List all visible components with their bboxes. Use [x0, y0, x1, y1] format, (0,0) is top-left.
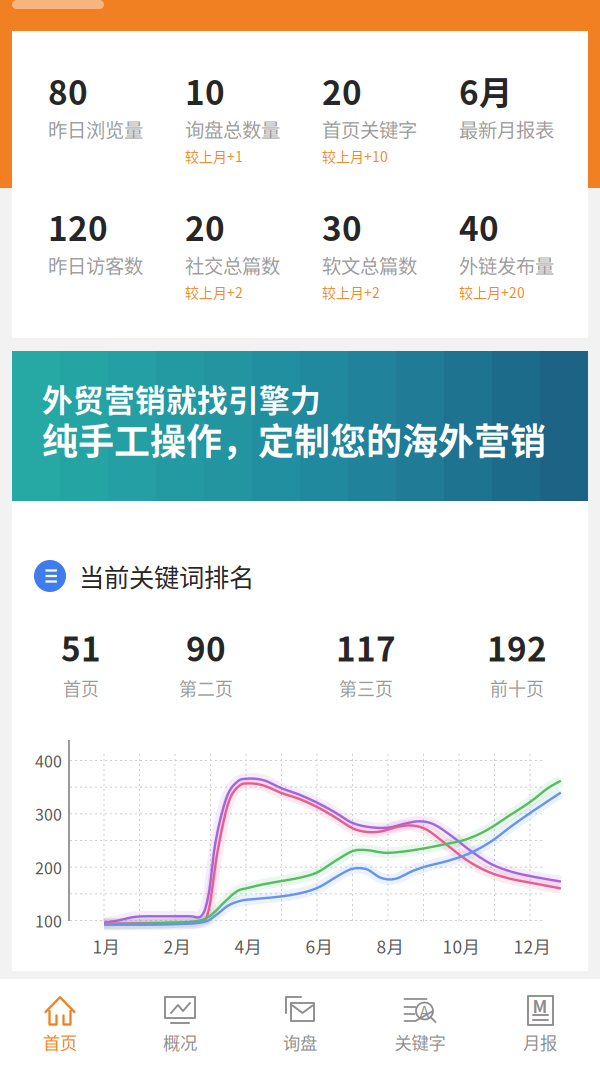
staticText: 8月 — [376, 933, 403, 959]
staticText: 概况 — [163, 1029, 197, 1055]
staticText: 90 — [186, 623, 226, 671]
staticText: 外链发布量 — [459, 251, 554, 279]
staticText: 社交总篇数 — [185, 251, 280, 279]
staticText: 首页 — [43, 1029, 77, 1055]
staticText: 月报 — [523, 1029, 557, 1055]
staticText: 192 — [487, 623, 547, 671]
staticText: 200 — [35, 856, 62, 879]
staticText: 关键字 — [394, 1029, 445, 1055]
staticText: 第三页 — [339, 675, 393, 701]
staticText: 10 — [185, 66, 225, 115]
staticText: 前十页 — [490, 675, 544, 701]
staticText: 300 — [35, 802, 62, 825]
button[interactable]: M — [480, 979, 600, 1067]
staticText: 4月 — [234, 933, 261, 959]
staticText: 询盘总数量 — [185, 115, 280, 143]
staticText: A — [419, 999, 429, 1023]
staticText: 昨日访客数 — [48, 251, 143, 279]
staticText: 外贸营销就找引擎力 — [42, 376, 321, 421]
staticText: 首页 — [63, 675, 99, 701]
button[interactable]: 询盘 — [240, 979, 360, 1067]
staticText: 2月 — [163, 933, 190, 959]
button[interactable]: 当前关键词排名 — [34, 556, 574, 596]
staticText: 较上月+10 — [322, 146, 388, 166]
staticText: 当前关键词排名 — [79, 558, 254, 594]
staticText: 40 — [459, 202, 499, 251]
staticText: 较上月+20 — [459, 282, 525, 302]
staticText: 6月 — [459, 66, 512, 115]
button[interactable]: A — [360, 979, 480, 1067]
staticText: 第二页 — [179, 675, 233, 701]
staticText: 软文总篇数 — [322, 251, 417, 279]
button[interactable]: 概况 — [120, 979, 240, 1067]
staticText: 30 — [322, 202, 362, 251]
staticText: 最新月报表 — [459, 115, 554, 143]
staticText: 1月 — [92, 933, 119, 959]
staticText: 昨日浏览量 — [48, 115, 143, 143]
staticText: 较上月+2 — [322, 282, 380, 302]
staticText: 117 — [336, 623, 396, 671]
staticText: 询盘 — [283, 1029, 317, 1055]
staticText: 100 — [35, 909, 62, 932]
staticText: 51 — [61, 623, 101, 671]
staticText: 较上月+2 — [185, 282, 243, 302]
button[interactable]: 首页 — [0, 979, 120, 1067]
staticText: 400 — [35, 749, 62, 772]
staticText: 80 — [48, 66, 88, 115]
staticText: 120 — [48, 202, 108, 251]
staticText: 12月 — [513, 933, 550, 959]
staticText: 较上月+1 — [185, 146, 243, 166]
staticText: 20 — [185, 202, 225, 251]
staticText: 10月 — [442, 933, 479, 959]
staticText: M — [532, 993, 547, 1018]
staticText: 纯手工操作，定制您的海外营销 — [42, 413, 546, 465]
staticText: 20 — [322, 66, 362, 115]
staticText: 首页关键字 — [322, 115, 417, 143]
staticText: 6月 — [305, 933, 332, 959]
